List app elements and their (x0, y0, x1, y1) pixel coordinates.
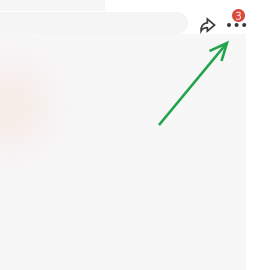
staticText: 3 (235, 8, 241, 23)
button[interactable]: Share (193, 11, 223, 39)
button[interactable]: More options (224, 7, 252, 35)
